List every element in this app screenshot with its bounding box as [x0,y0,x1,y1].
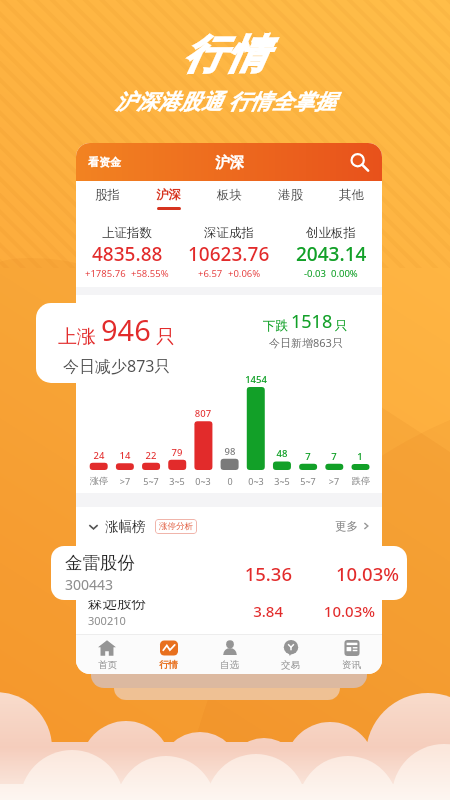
staticText: 7 [321,450,347,463]
button[interactable]: 首页 [76,634,138,674]
staticText: 1518 [291,309,333,334]
staticText: 22 [138,449,164,462]
staticText: +58.55% [131,267,169,280]
staticText: 10623.76 [188,241,270,267]
button[interactable]: 板块 [199,181,260,212]
staticText: >7 [109,475,141,487]
staticText: 300443 [88,569,126,584]
button[interactable]: 行情 [138,634,199,674]
staticText: 15.36 [194,561,292,586]
staticText: 首页 [98,659,117,671]
staticText: 4835.88 [92,241,163,267]
button[interactable]: 资讯 [321,634,382,674]
staticText: 79 [164,446,190,459]
staticText: 1454 [243,373,269,386]
staticText: 15.36 [198,557,283,577]
staticText: 10.03% [283,557,375,577]
button[interactable]: 交易 [260,634,321,674]
staticText: 深证成指 [204,225,254,241]
button[interactable]: 更多 [335,519,371,533]
staticText: 1 [347,450,373,463]
staticText: 946 [101,310,151,349]
staticText: 0~3 [240,475,272,487]
staticText: 上证指数 [102,225,152,241]
staticText: 金雷股份 [88,550,146,568]
button[interactable]: 港股 [260,181,321,212]
staticText: 自选 [220,659,239,671]
button[interactable]: 自选 [199,634,260,674]
button[interactable]: 森远股份 [76,589,382,633]
staticText: 沪深 [156,187,181,203]
staticText: 98 [217,445,243,458]
staticText: 300210 [88,613,126,628]
button[interactable]: 上涨 [36,303,196,383]
staticText: 只 [156,325,175,349]
button[interactable]: Search [348,151,370,173]
staticText: 今日减少873只 [63,355,171,377]
staticText: 48 [269,447,295,460]
staticText: 涨停 [83,475,115,486]
button[interactable]: 金雷股份 [76,545,382,589]
staticText: 下跌 [263,318,288,334]
staticText: 涨停分析 [159,521,193,532]
staticText: 10.03% [283,601,375,621]
staticText: +0.06% [228,267,261,280]
staticText: 0.00% [331,267,358,280]
staticText: -0.03 [304,267,326,280]
button[interactable]: 看资金 [76,155,121,169]
staticText: 板块 [217,187,242,203]
staticText: 今日减少873只 [116,335,190,350]
staticText: 跌停 [345,475,377,486]
staticText: 其他 [339,187,364,203]
staticText: 今日新增863只 [269,335,343,350]
button[interactable]: 涨停分析 [155,519,197,534]
button[interactable]: 股指 [76,181,138,212]
button[interactable]: 上证指数 [76,212,178,287]
staticText: 资讯 [342,659,361,671]
button[interactable]: 其他 [321,181,382,212]
button[interactable]: 金雷股份 [51,546,407,600]
staticText: 只 [335,318,348,334]
staticText: 上涨 [58,325,96,349]
staticText: 创业板指 [306,225,356,241]
staticText: 沪深 [215,153,244,171]
staticText: 3.84 [198,601,283,621]
staticText: 24 [86,449,112,462]
button[interactable]: 深证成指 [178,212,280,287]
staticText: 涨幅榜 [105,518,146,535]
staticText: 3~5 [266,475,298,487]
staticText: 上涨 [116,318,141,334]
staticText: 0~3 [187,475,219,487]
staticText: 森远股份 [88,594,146,612]
staticText: +6.57 [198,267,223,280]
staticText: 7 [295,450,321,463]
button[interactable]: 沪深 [138,181,199,212]
staticText: >7 [318,475,350,487]
staticText: +1785.76 [85,267,126,280]
staticText: 946 [144,309,175,334]
staticText: 10.03% [292,561,399,586]
button[interactable]: 创业板指 [280,212,382,287]
staticText: 更多 [335,519,358,533]
staticText: 5~7 [135,475,167,487]
staticText: 沪深港股通 行情全掌握 [115,87,336,116]
staticText: 3~5 [161,475,193,487]
staticText: 行情 [182,29,268,79]
staticText: 港股 [278,187,303,203]
staticText: 金雷股份 [65,552,135,574]
staticText: 300443 [65,575,114,594]
staticText: 2043.14 [296,241,367,267]
staticText: 807 [190,407,216,420]
staticText: 股指 [95,187,120,203]
staticText: 0 [214,475,246,487]
staticText: 行情 [159,659,178,671]
staticText: 交易 [281,659,300,671]
staticText: 5~7 [292,475,324,487]
staticText: 14 [112,449,138,462]
